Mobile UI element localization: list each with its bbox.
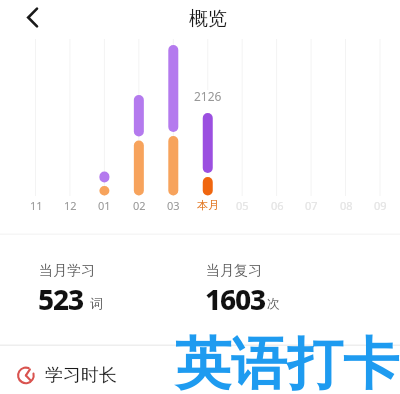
staticText: 当月学习 — [39, 262, 95, 280]
staticText: 05 — [236, 198, 249, 213]
staticText: 学习时长 — [45, 364, 117, 387]
staticText: 02 — [133, 198, 146, 213]
staticText: 当月复习 — [206, 262, 262, 280]
staticText: 01 — [98, 198, 111, 213]
staticText: 概览 — [189, 7, 227, 31]
staticText: 11 — [30, 198, 43, 213]
staticText: 12 — [64, 198, 77, 213]
staticText: 03 — [167, 198, 180, 213]
staticText: 次 — [267, 295, 280, 311]
staticText: 523 — [38, 280, 83, 318]
staticText: 1603 — [205, 280, 265, 318]
staticText: 本月 — [197, 198, 219, 212]
staticText: 08 — [340, 198, 353, 213]
staticText: 06 — [271, 198, 284, 213]
staticText: 2126 — [194, 88, 222, 104]
staticText: 07 — [305, 198, 318, 213]
staticText: 09 — [374, 198, 387, 213]
staticText: 英语打卡 — [175, 329, 399, 394]
staticText: 词 — [90, 295, 103, 311]
